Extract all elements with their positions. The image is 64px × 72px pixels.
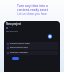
staticText: Draft <box>9 26 14 29</box>
button[interactable]: Product launch video <box>6 42 58 46</box>
staticText: New project <box>6 22 21 26</box>
staticText: Recent files <box>6 30 18 33</box>
staticText: Brand refresh deck <box>10 46 28 49</box>
button[interactable] <box>12 57 19 60</box>
staticText: Product launch video <box>10 42 30 45</box>
button[interactable]: Let us show you how <box>17 12 47 16</box>
button[interactable]: Summer campaign <box>6 51 58 55</box>
staticText: Turn any idea into a content-ready asset <box>17 4 48 12</box>
button[interactable]: Draft <box>6 26 14 29</box>
button[interactable]: Brand refresh deck <box>6 46 58 50</box>
staticText: Summer campaign <box>10 51 28 54</box>
